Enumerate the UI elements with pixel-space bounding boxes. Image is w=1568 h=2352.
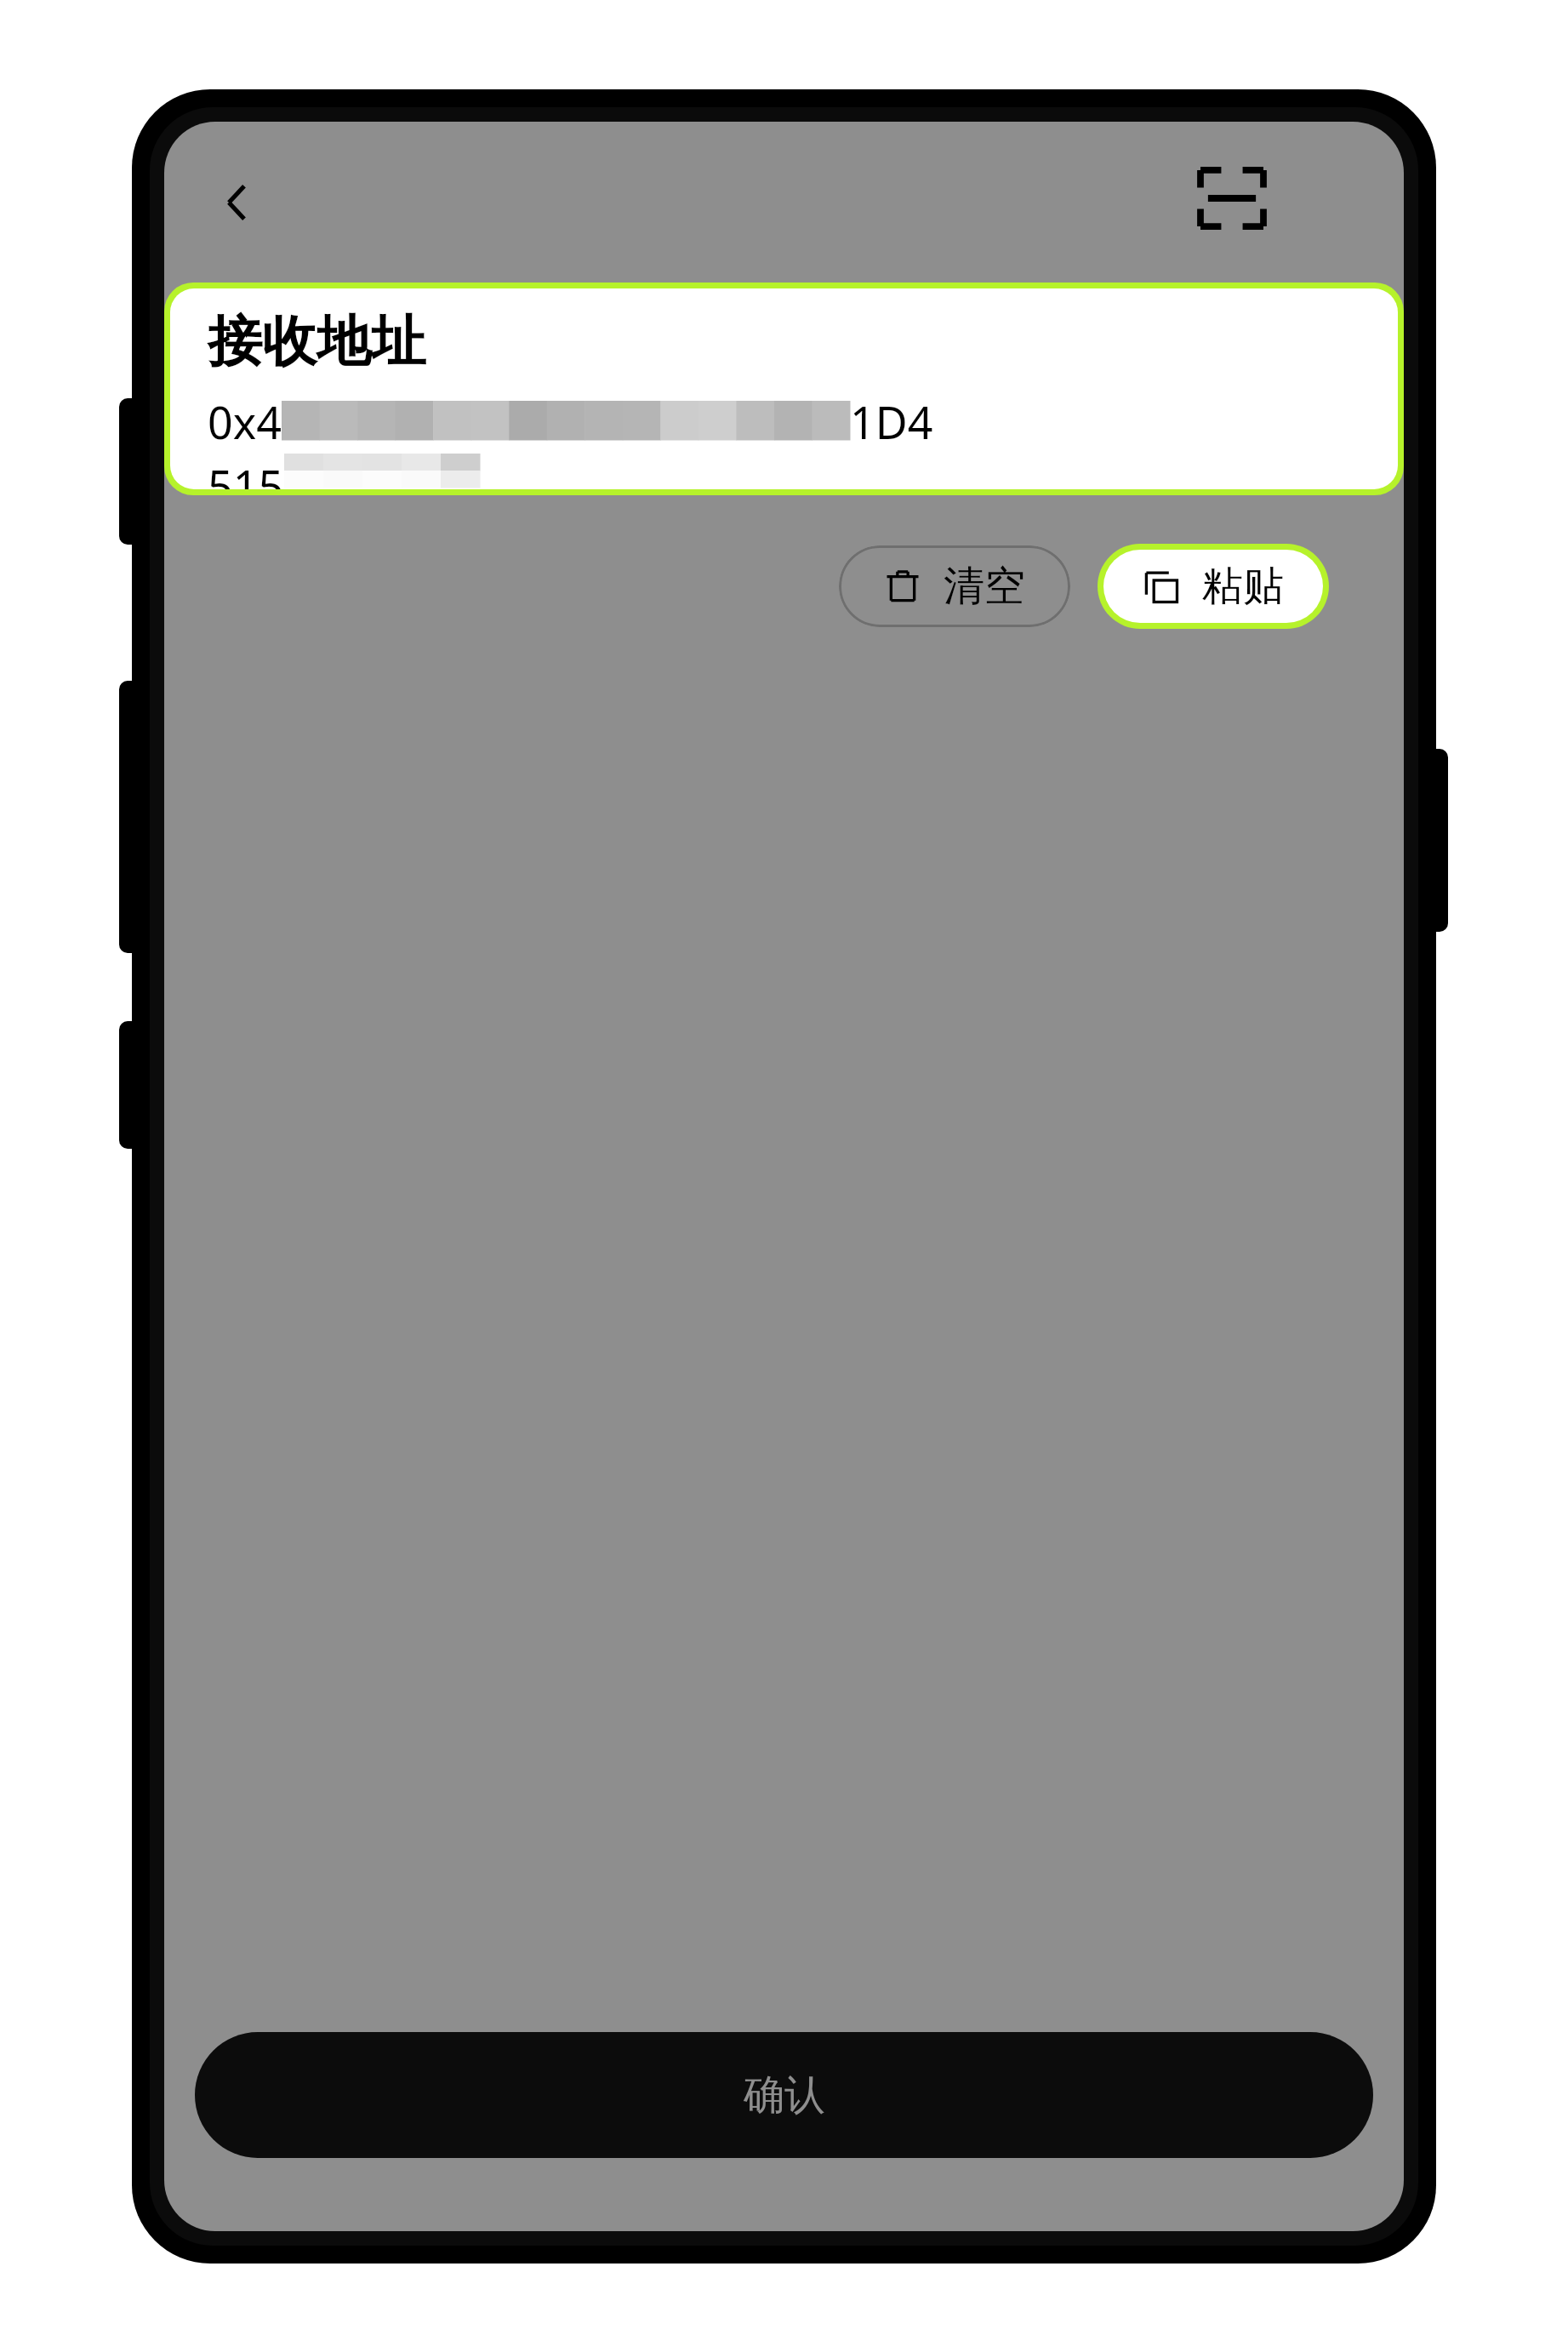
staticText: 粘贴: [1202, 561, 1284, 612]
button[interactable]: Scan: [1172, 139, 1291, 258]
button[interactable]: Back: [188, 151, 290, 254]
staticText: 0x4: [208, 391, 282, 452]
button[interactable]: 粘贴: [1103, 550, 1323, 623]
button[interactable]: 确认: [195, 2032, 1373, 2158]
staticText: 确认: [744, 2069, 825, 2121]
staticText: 清空: [944, 561, 1025, 612]
button[interactable]: 接收地址: [170, 288, 1398, 489]
staticText: 515: [208, 455, 284, 489]
staticText: 接收地址: [208, 307, 425, 376]
button[interactable]: 清空: [839, 545, 1070, 627]
staticText: 1D4: [850, 391, 933, 452]
